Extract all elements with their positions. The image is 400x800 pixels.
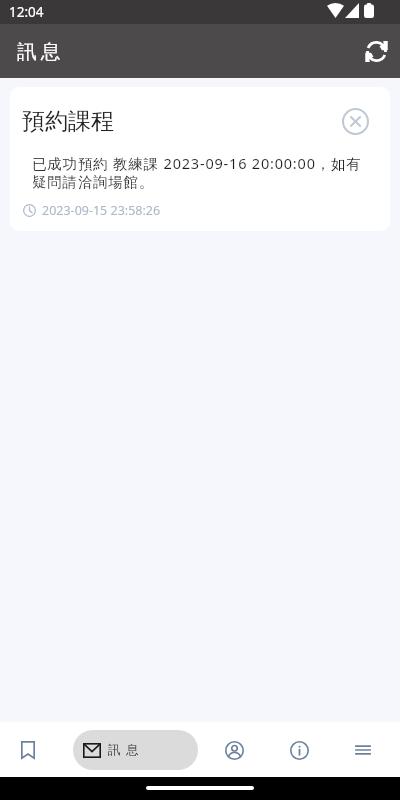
staticText: 12:04 bbox=[9, 3, 44, 21]
button[interactable]: Menu bbox=[339, 726, 387, 774]
staticText: 預約課程 bbox=[22, 107, 339, 136]
button[interactable]: 訊息 bbox=[73, 730, 198, 770]
staticText: 訊息 bbox=[108, 742, 145, 758]
button[interactable]: Bookmarks bbox=[0, 726, 55, 774]
button[interactable]: Account bbox=[210, 726, 258, 774]
button[interactable]: Refresh bbox=[356, 31, 396, 71]
button[interactable]: 預約課程 bbox=[10, 87, 390, 231]
button[interactable]: Info bbox=[275, 726, 323, 774]
staticText: 已成功預約 教練課 2023-09-16 20:00:00，如有疑問請洽詢場館。 bbox=[32, 153, 369, 191]
staticText: 訊息 bbox=[17, 39, 65, 64]
staticText: 2023-09-15 23:58:26 bbox=[42, 202, 161, 219]
button[interactable]: Dismiss bbox=[339, 105, 371, 137]
